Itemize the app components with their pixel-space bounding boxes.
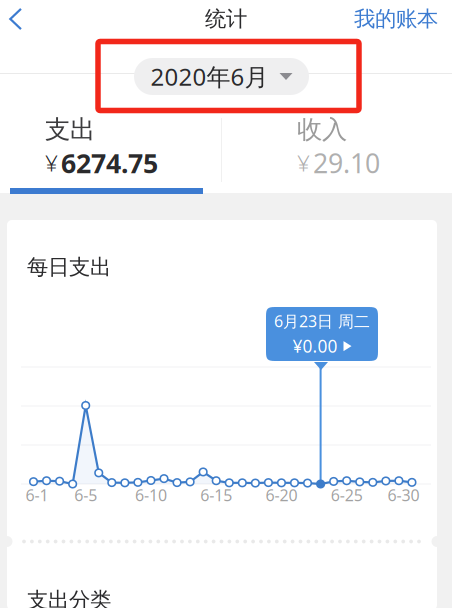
button[interactable]: 支出 <box>45 114 225 174</box>
staticText: 我的账本 <box>354 6 438 32</box>
staticText: 收入 <box>297 114 347 145</box>
button[interactable]: 收入 <box>297 114 452 174</box>
staticText: 6274.75 <box>61 145 158 180</box>
staticText: 6-20 <box>265 484 297 506</box>
staticText: 6-5 <box>74 484 97 506</box>
button[interactable]: Back <box>0 0 38 38</box>
staticText: ¥0.00 <box>292 335 337 358</box>
staticText: 支出 <box>45 114 95 145</box>
staticText: 统计 <box>205 6 247 32</box>
staticText: ¥ <box>297 148 310 178</box>
button[interactable]: 我的账本 <box>346 0 446 38</box>
staticText: 6-10 <box>135 484 167 506</box>
button[interactable]: 2020年6月 <box>134 58 309 95</box>
staticText: ¥ <box>45 148 58 178</box>
staticText: 支出分类 <box>27 587 111 608</box>
staticText: 29.10 <box>313 145 380 180</box>
staticText: 每日支出 <box>27 254 111 280</box>
staticText: 6月23日 周二 <box>274 310 370 332</box>
staticText: 6-30 <box>387 484 419 506</box>
staticText: 6-15 <box>200 484 232 506</box>
staticText: 6-25 <box>331 484 363 506</box>
staticText: 2020年6月 <box>150 61 268 92</box>
staticText: 6-1 <box>25 484 48 506</box>
